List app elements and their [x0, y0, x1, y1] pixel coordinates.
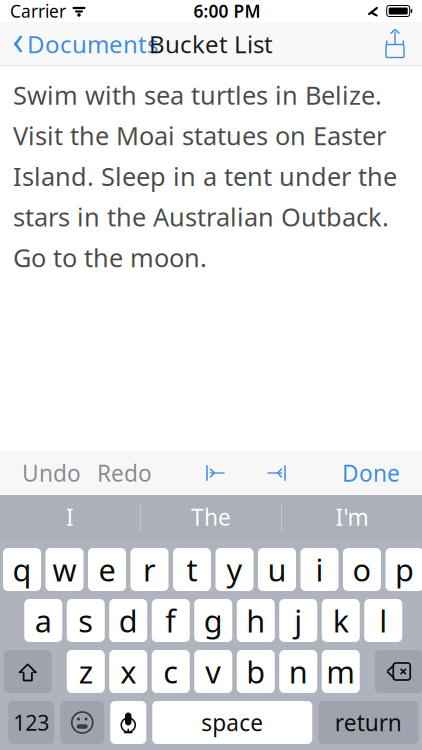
button[interactable]: p	[385, 548, 422, 591]
staticText: u	[267, 549, 286, 590]
button[interactable]: space	[152, 701, 312, 744]
staticText: Swim with sea turtles in Belize. Visit t…	[13, 78, 397, 274]
staticText: Undo	[22, 458, 81, 488]
staticText: m	[326, 651, 355, 692]
button[interactable]: q	[3, 548, 41, 591]
staticText: n	[289, 651, 308, 692]
staticText: i	[315, 549, 323, 590]
staticText: f	[165, 600, 176, 641]
staticText: b	[246, 651, 265, 692]
button[interactable]: Next field	[255, 455, 295, 491]
button[interactable]: return	[318, 701, 418, 744]
button[interactable]: m	[322, 650, 360, 693]
button[interactable]: b	[237, 650, 275, 693]
button[interactable]: s	[67, 599, 105, 642]
button[interactable]: a	[24, 599, 62, 642]
button[interactable]: t	[173, 548, 211, 591]
staticText: l	[379, 600, 387, 641]
staticText: a	[35, 600, 52, 641]
staticText: h	[246, 600, 265, 641]
button[interactable]: Share	[384, 26, 422, 62]
staticText: Bucket List	[149, 28, 273, 60]
staticText: 6:00 PM	[193, 0, 260, 22]
staticText: g	[204, 600, 223, 641]
staticText: v	[205, 651, 221, 692]
button[interactable]: c	[152, 650, 190, 693]
button[interactable]: u	[258, 548, 296, 591]
button[interactable]: d	[109, 599, 147, 642]
button[interactable]: Undo	[14, 450, 89, 496]
button[interactable]: w	[45, 548, 83, 591]
button[interactable]: I	[0, 495, 140, 539]
staticText: q	[12, 549, 31, 590]
staticText: 123	[13, 708, 49, 737]
staticText: I'm	[335, 502, 368, 532]
button[interactable]: l	[364, 599, 402, 642]
staticText: j	[294, 600, 302, 641]
button[interactable]: e	[88, 548, 126, 591]
button[interactable]: x	[109, 650, 147, 693]
button[interactable]: I'm	[282, 495, 422, 539]
staticText: Redo	[97, 458, 152, 488]
staticText: Documents	[27, 28, 158, 60]
staticText: space	[201, 707, 263, 737]
staticText: The	[191, 502, 231, 532]
button[interactable]: v	[194, 650, 232, 693]
staticText: o	[352, 549, 371, 590]
button[interactable]: n	[279, 650, 317, 693]
button[interactable]: Documents	[0, 22, 158, 66]
button[interactable]: Dictate	[110, 701, 146, 744]
staticText: c	[163, 651, 178, 692]
button[interactable]: h	[237, 599, 275, 642]
button[interactable]: g	[194, 599, 232, 642]
staticText: y	[226, 549, 242, 590]
staticText: Carrier	[10, 0, 66, 22]
staticText: w	[52, 549, 76, 590]
button[interactable]: Emoji	[60, 701, 104, 744]
staticText: x	[120, 651, 136, 692]
button[interactable]: z	[67, 650, 105, 693]
button[interactable]: j	[279, 599, 317, 642]
staticText	[66, 0, 71, 22]
button[interactable]: y	[215, 548, 253, 591]
staticText: d	[119, 600, 138, 641]
staticText: s	[78, 600, 93, 641]
button[interactable]: Redo	[89, 450, 160, 496]
staticText: t	[186, 549, 197, 590]
staticText: r	[143, 549, 156, 590]
button[interactable]: i	[300, 548, 338, 591]
button[interactable]: k	[322, 599, 360, 642]
button[interactable]: Done	[332, 450, 410, 496]
staticText: p	[395, 549, 414, 590]
button[interactable]: Delete	[375, 650, 422, 693]
staticText: I	[66, 502, 74, 532]
staticText: return	[335, 707, 402, 737]
button[interactable]: r	[130, 548, 168, 591]
staticText: z	[79, 651, 93, 692]
staticText: Done	[342, 458, 400, 488]
button[interactable]: The	[141, 495, 281, 539]
button[interactable]: 123	[8, 701, 54, 744]
button[interactable]: o	[343, 548, 381, 591]
staticText: e	[98, 549, 115, 590]
button[interactable]: Shift	[4, 650, 52, 693]
button[interactable]: Previous field	[197, 455, 237, 491]
button[interactable]: f	[152, 599, 190, 642]
staticText: k	[333, 600, 349, 641]
